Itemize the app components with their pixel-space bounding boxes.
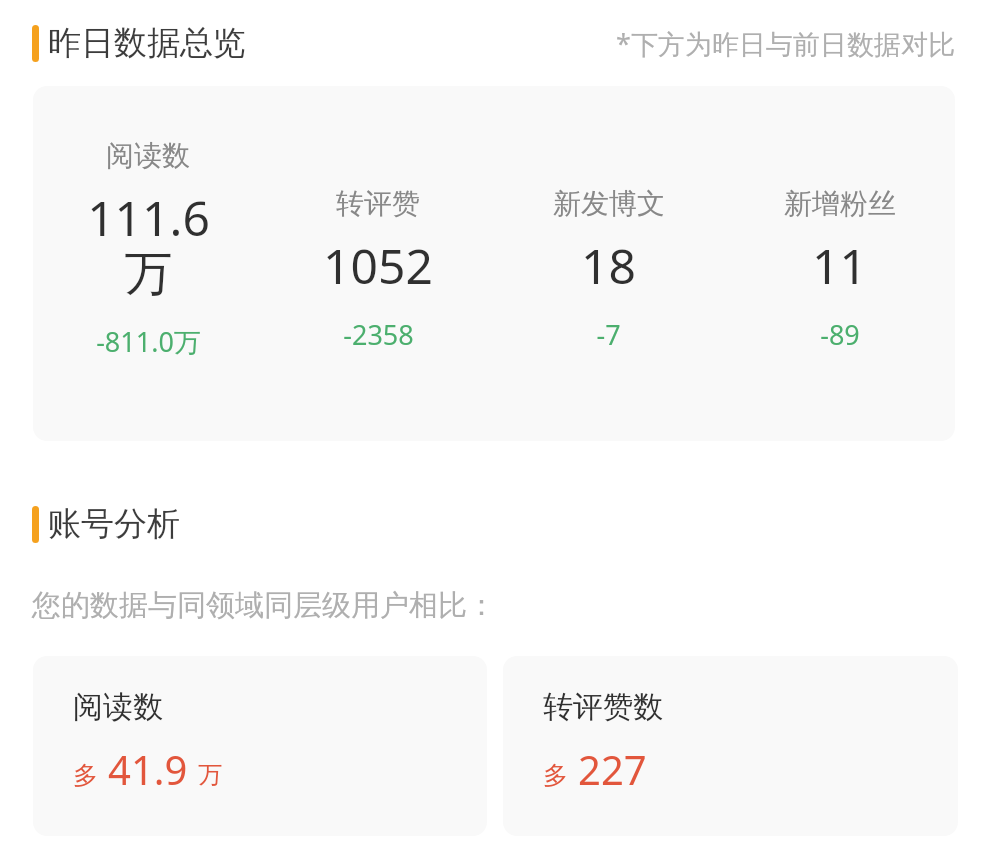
staticText: 227 [578,742,647,796]
staticText: -2358 [343,316,414,353]
staticText: 账号分析 [48,503,180,545]
staticText: 18 [581,233,636,298]
staticText: 转评赞数 [543,688,663,726]
staticText: -811.0万 [96,323,201,360]
staticText: 万 [198,760,222,790]
staticText: 转评赞 [336,186,420,221]
button[interactable]: 账号分析 [48,503,180,545]
staticText: 111.6 万 [87,185,210,305]
button[interactable]: 阅读数 [33,86,263,360]
button[interactable]: 新发博文 [493,86,724,353]
button[interactable]: 转评赞数 [503,656,958,836]
staticText: 阅读数 [106,138,190,173]
staticText: *下方为昨日与前日数据对比 [616,25,955,62]
staticText: 新增粉丝 [784,186,896,221]
staticText: 昨日数据总览 [48,22,246,64]
button[interactable]: 转评赞 [263,86,493,353]
staticText: -89 [820,316,860,353]
staticText: 11 [812,233,867,298]
staticText: 41.9 [108,742,188,796]
staticText: 多 [543,760,568,791]
staticText: 您的数据与同领域同层级用户相比： [32,587,496,624]
staticText: 多 [73,760,98,791]
button[interactable]: 昨日数据总览 [48,22,246,64]
button[interactable]: 阅读数 [33,656,487,836]
staticText: 新发博文 [553,186,665,221]
staticText: 1052 [323,233,433,298]
staticText: 阅读数 [73,688,163,726]
button[interactable]: 阅读数 [33,86,955,441]
button[interactable]: 新增粉丝 [724,86,955,353]
staticText: -7 [596,316,621,353]
